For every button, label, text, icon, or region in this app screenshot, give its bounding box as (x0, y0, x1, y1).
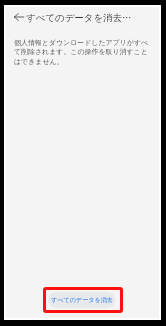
staticText: すべてのデータを消去しますか (26, 12, 138, 24)
staticText: 個人情報とダウンロードしたアプリがすべて削除されます。この操作を取り消すことはで… (14, 38, 151, 66)
button[interactable]: すべてのデータを消去 (48, 292, 115, 308)
staticText: すべてのデータを消去 (51, 296, 113, 304)
button[interactable]: Back (9, 7, 28, 26)
